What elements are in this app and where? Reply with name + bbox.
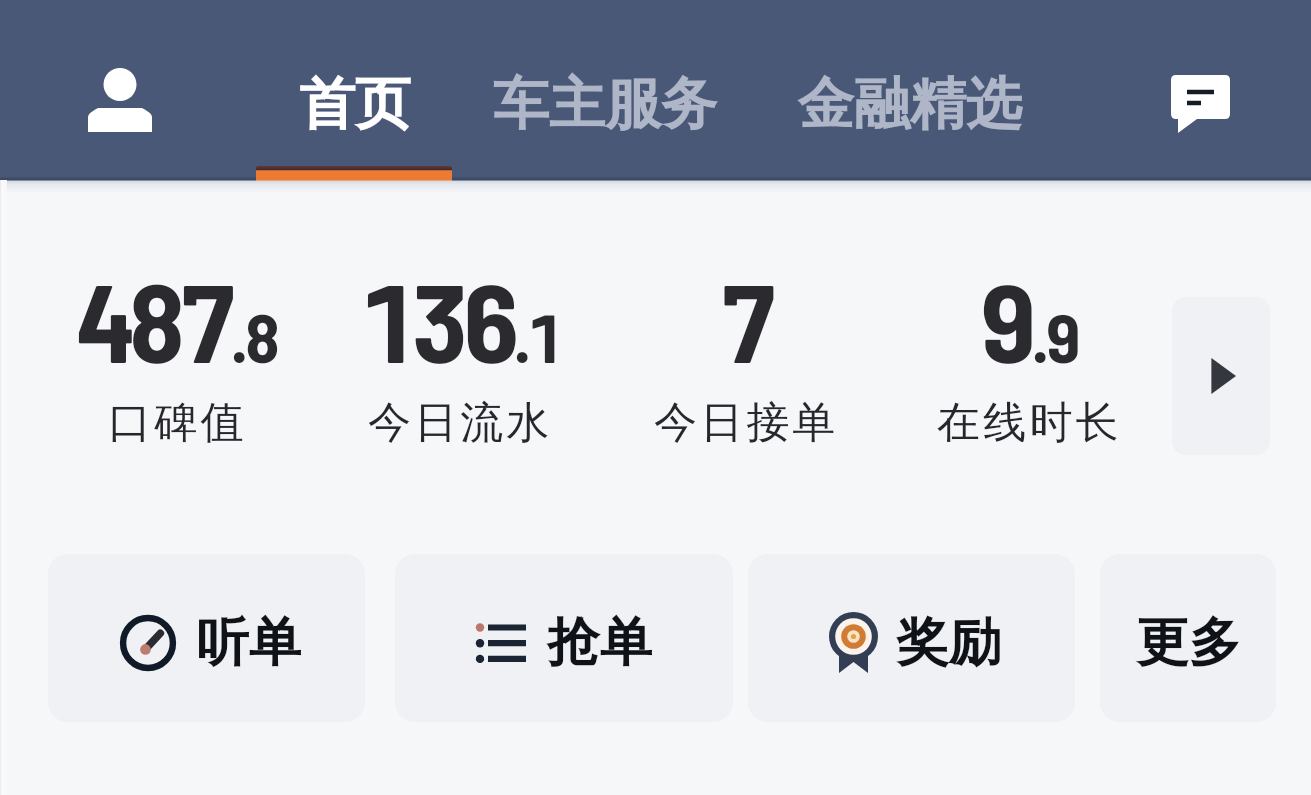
button[interactable]: 车主服务 (480, 51, 730, 141)
button[interactable]: 9 (839, 253, 1219, 450)
staticText: 车主服务 (493, 69, 717, 140)
staticText: 7 (720, 253, 772, 385)
button[interactable]: 金融精选 (784, 51, 1035, 141)
staticText: 抢单 (547, 610, 652, 676)
button[interactable]: 抢单 (395, 554, 733, 722)
button[interactable]: 487 (0, 253, 367, 450)
button[interactable]: More statistics (1172, 297, 1270, 455)
button[interactable]: 奖励 (748, 554, 1075, 722)
button[interactable]: 听单 (48, 554, 365, 722)
button[interactable]: Home tab indicator (256, 166, 452, 181)
staticText: 奖励 (896, 610, 1001, 676)
button[interactable]: 首页 (285, 51, 424, 141)
staticText: .8 (231, 295, 278, 377)
staticText: 136 (360, 253, 514, 385)
staticText: 在线时长 (937, 396, 1122, 450)
staticText: 听单 (196, 610, 301, 676)
staticText: 今日流水 (368, 396, 553, 450)
staticText: 487 (77, 253, 231, 385)
button[interactable]: 136 (270, 253, 650, 450)
button[interactable]: 7 (556, 253, 936, 450)
staticText: .9 (1032, 295, 1079, 377)
staticText: .1 (514, 295, 561, 377)
staticText: 今日接单 (654, 396, 839, 450)
button[interactable]: Messages (1161, 65, 1241, 145)
staticText: 金融精选 (798, 69, 1022, 140)
button[interactable]: 更多 (1100, 554, 1276, 722)
staticText: 更多 (1136, 610, 1241, 676)
staticText: 口碑值 (108, 396, 247, 450)
staticText: 首页 (299, 69, 411, 140)
staticText: 9 (980, 253, 1032, 385)
button[interactable]: Profile (80, 52, 160, 148)
